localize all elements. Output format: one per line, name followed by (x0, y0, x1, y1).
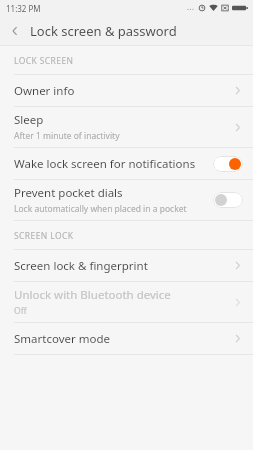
button[interactable]: Sleep (0, 107, 253, 147)
staticText: Wake lock screen for notifications (14, 156, 196, 172)
staticText: Lock screen & password (30, 22, 177, 40)
staticText: Sleep (14, 112, 44, 128)
button[interactable]: Smartcover mode (0, 323, 253, 354)
staticText: Owner info (14, 83, 75, 99)
staticText: LOCK SCREEN (14, 55, 74, 67)
staticText: Lock automatically when placed in a pock… (14, 203, 187, 215)
staticText: After 1 minute of inactivity (14, 130, 120, 142)
staticText: 11:32 PM (6, 3, 41, 14)
staticText: SCREEN LOCK (14, 230, 74, 242)
button[interactable]: Owner info (0, 75, 253, 106)
staticText: Prevent pocket dials (14, 185, 123, 201)
staticText: Unlock with Bluetooth device (14, 287, 171, 303)
button[interactable]: Prevent pocket dials (0, 180, 253, 220)
staticText: Off (14, 305, 27, 317)
button[interactable]: Off (213, 192, 243, 208)
staticText: Smartcover mode (14, 331, 111, 347)
button[interactable]: Unlock with Bluetooth device (0, 282, 253, 322)
button[interactable]: Screen lock & fingerprint (0, 250, 253, 281)
button[interactable]: Back (0, 16, 30, 45)
button[interactable]: On (213, 156, 243, 172)
staticText: Screen lock & fingerprint (14, 258, 148, 274)
button[interactable]: Wake lock screen for notifications (0, 148, 253, 179)
